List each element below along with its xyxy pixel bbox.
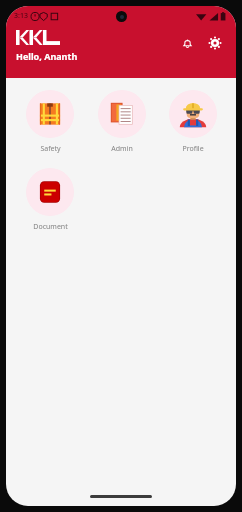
button[interactable]: Admin (86, 88, 157, 156)
staticText: Admin (111, 144, 133, 154)
staticText: Hello, Ananth (16, 50, 78, 62)
staticText: Document (33, 222, 68, 232)
staticText: Safety (40, 144, 61, 154)
staticText: 3:13 (14, 11, 28, 21)
button[interactable]: Document (14, 166, 86, 234)
button[interactable]: Profile (157, 88, 228, 156)
button[interactable]: Notifications (176, 32, 198, 54)
staticText: Profile (182, 144, 204, 154)
button[interactable]: Safety (14, 88, 86, 156)
button[interactable]: Settings (204, 32, 226, 54)
